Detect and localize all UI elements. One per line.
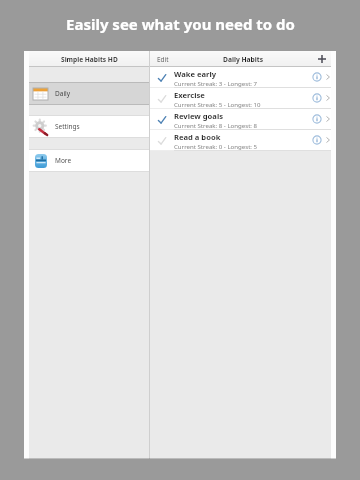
staticText: More <box>55 156 72 165</box>
button[interactable]: Exercise <box>150 88 331 108</box>
staticText: Easily see what you need to do <box>66 14 295 34</box>
button[interactable]: Daily <box>29 82 149 105</box>
button[interactable]: Settings <box>29 115 149 138</box>
button[interactable]: Details for Review goals <box>310 109 324 129</box>
button[interactable]: Read a book <box>150 130 331 150</box>
button[interactable]: Review goals <box>150 109 331 129</box>
staticText: Edit <box>157 55 169 64</box>
button[interactable]: Edit <box>157 51 169 67</box>
button[interactable]: Details for Exercise <box>310 88 324 108</box>
staticText: Current Streak: 0 - Longest: 5 <box>174 142 258 150</box>
staticText: Simple Habits HD <box>61 55 118 64</box>
button[interactable]: More <box>29 149 149 172</box>
button[interactable]: Details for Read a book <box>310 130 324 150</box>
staticText: Daily Habits <box>223 55 264 64</box>
staticText: Daily <box>55 89 71 98</box>
button[interactable]: Details for Wake early <box>310 67 324 87</box>
staticText: Review goals <box>174 111 223 121</box>
button[interactable]: Wake early <box>150 67 331 87</box>
staticText: Exercise <box>174 90 205 100</box>
staticText: Settings <box>55 122 80 131</box>
staticText: Wake early <box>174 69 217 79</box>
staticText: Current Streak: 3 - Longest: 7 <box>174 79 258 87</box>
staticText: Current Streak: 5 - Longest: 10 <box>174 100 261 108</box>
button[interactable]: Add habit <box>312 51 331 67</box>
staticText: Current Streak: 8 - Longest: 8 <box>174 121 258 129</box>
staticText: Read a book <box>174 132 221 142</box>
